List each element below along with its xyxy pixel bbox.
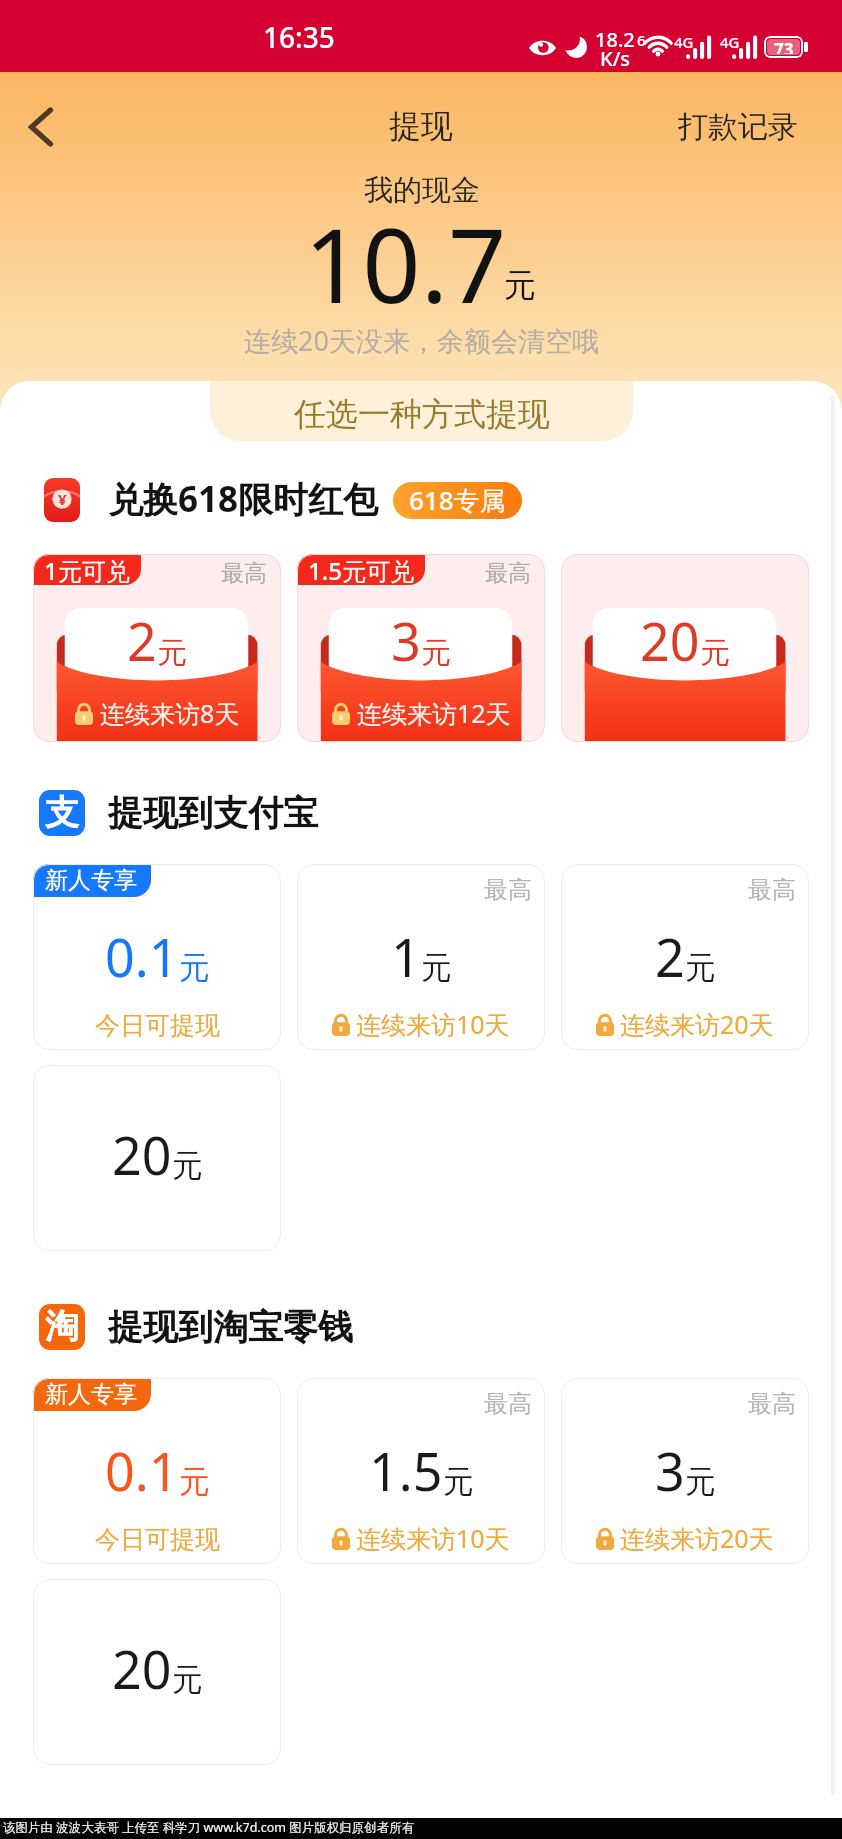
staticText: 淘 bbox=[45, 1305, 79, 1348]
staticText: 连续来访10天 bbox=[356, 1007, 510, 1041]
staticText: 4G bbox=[720, 32, 740, 52]
button[interactable]: 最高 bbox=[561, 1378, 809, 1564]
staticText: 6 bbox=[637, 30, 646, 50]
staticText: K/s bbox=[600, 45, 631, 72]
staticText: 支 bbox=[45, 791, 79, 834]
staticText: 最高 bbox=[484, 875, 532, 905]
staticText: 18.2 bbox=[595, 26, 635, 53]
staticText: 该图片由 波波大表哥 上传至 科学刀 www.k7d.com 图片版权归原创者所… bbox=[3, 1819, 415, 1836]
staticText: 3 bbox=[655, 1435, 685, 1506]
staticText: 元 bbox=[421, 948, 452, 987]
staticText: 0.1 bbox=[105, 1435, 179, 1506]
staticText: 最高 bbox=[484, 1389, 532, 1419]
staticText: 兑换618限时红包 bbox=[108, 475, 379, 519]
staticText: 10.7 bbox=[304, 194, 507, 333]
staticText: 最高 bbox=[748, 875, 796, 905]
staticText: 0.1 bbox=[105, 921, 179, 992]
button[interactable]: 新人专享 bbox=[33, 1378, 281, 1564]
staticText: 提现到支付宝 bbox=[108, 791, 318, 835]
staticText: 1 bbox=[391, 921, 421, 992]
staticText: 元 bbox=[443, 1462, 474, 1501]
staticText: 连续20天没来，余额会清空哦 bbox=[244, 322, 599, 359]
staticText: 连续来访8天 bbox=[100, 696, 240, 730]
button[interactable]: 最高 bbox=[297, 554, 545, 742]
staticText: 20 bbox=[640, 605, 700, 676]
staticText: 提现 bbox=[389, 106, 453, 146]
staticText: 20 bbox=[112, 1633, 172, 1704]
staticText: 连续来访10天 bbox=[356, 1521, 510, 1555]
staticText: 元 bbox=[504, 265, 536, 305]
button[interactable]: 20 bbox=[33, 1579, 281, 1765]
staticText: 元 bbox=[685, 1462, 716, 1501]
staticText: 4G bbox=[674, 32, 694, 52]
staticText: 1元可兑 bbox=[44, 554, 130, 585]
staticText: 连续来访12天 bbox=[357, 696, 511, 730]
button[interactable]: 最高 bbox=[561, 864, 809, 1050]
staticText: 1.5元可兑 bbox=[308, 554, 414, 585]
staticText: 元 bbox=[700, 634, 730, 672]
button[interactable]: 20 bbox=[33, 1065, 281, 1251]
staticText: 16:35 bbox=[263, 18, 335, 56]
staticText: 元 bbox=[172, 1660, 203, 1699]
staticText: 最高 bbox=[748, 1389, 796, 1419]
button[interactable]: 最高 bbox=[297, 1378, 545, 1564]
staticText: 任选一种方式提现 bbox=[294, 394, 550, 434]
staticText: 元 bbox=[157, 634, 187, 672]
staticText: 3 bbox=[391, 605, 421, 676]
staticText: 今日可提现 bbox=[95, 1010, 220, 1041]
staticText: 我的现金 bbox=[364, 172, 480, 209]
staticText: 元 bbox=[172, 1146, 203, 1185]
staticText: 1.5 bbox=[369, 1435, 443, 1506]
staticText: 元 bbox=[179, 948, 210, 987]
staticText: 提现到淘宝零钱 bbox=[108, 1305, 353, 1349]
staticText: 新人专享 bbox=[45, 866, 137, 895]
staticText: ¥ bbox=[58, 489, 67, 509]
staticText: 618专属 bbox=[409, 482, 506, 518]
staticText: 73 bbox=[774, 39, 794, 54]
staticText: 连续来访20天 bbox=[620, 1007, 774, 1041]
staticText: 2 bbox=[127, 605, 157, 676]
staticText: 20 bbox=[112, 1119, 172, 1190]
button[interactable]: 最高 bbox=[33, 554, 281, 742]
button[interactable]: 新人专享 bbox=[33, 864, 281, 1050]
staticText: 连续来访20天 bbox=[620, 1521, 774, 1555]
button[interactable]: 20 bbox=[561, 554, 809, 742]
staticText: 今日可提现 bbox=[95, 1524, 220, 1555]
staticText: 元 bbox=[179, 1462, 210, 1501]
button[interactable]: Back bbox=[8, 94, 74, 160]
staticText: 元 bbox=[685, 948, 716, 987]
staticText: 新人专享 bbox=[45, 1380, 137, 1409]
staticText: 最高 bbox=[485, 559, 531, 588]
staticText: 2 bbox=[655, 921, 685, 992]
staticText: 元 bbox=[421, 634, 451, 672]
button[interactable]: 打款记录 bbox=[670, 100, 842, 154]
staticText: 最高 bbox=[221, 559, 267, 588]
button[interactable]: 最高 bbox=[297, 864, 545, 1050]
